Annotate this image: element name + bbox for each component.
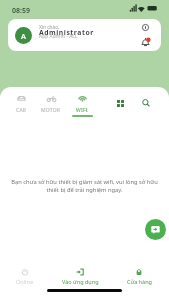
- button[interactable]: CAR: [5, 88, 37, 119]
- staticText: Xin chào,: [39, 24, 60, 31]
- button[interactable]: MOTOR: [35, 88, 67, 119]
- button[interactable]: Add new device: [145, 219, 166, 240]
- button[interactable]: Search: [134, 91, 158, 115]
- button[interactable]: Information: [138, 20, 152, 34]
- staticText: CAR: [16, 107, 27, 114]
- staticText: MOTOR: [41, 107, 61, 114]
- button[interactable]: Vào ứng dụng: [56, 258, 104, 300]
- staticText: Cửa hàng: [127, 278, 152, 285]
- button[interactable]: Online: [1, 258, 49, 300]
- button[interactable]: A: [8, 19, 161, 51]
- button[interactable]: WIFI: [66, 88, 98, 119]
- button[interactable]: Grid view: [108, 91, 132, 115]
- staticText: Bạn chưa sở hữu thiết bị giám sát wifi, …: [7, 178, 162, 194]
- staticText: Vào ứng dụng: [62, 278, 99, 285]
- staticText: Online: [16, 278, 34, 285]
- staticText: Administrator: [39, 28, 94, 37]
- staticText: App Admin - ALL: [39, 33, 78, 40]
- button[interactable]: Notifications: [137, 34, 153, 50]
- staticText: A: [21, 31, 26, 41]
- staticText: WIFI: [76, 107, 88, 114]
- button[interactable]: Cửa hàng: [115, 258, 163, 300]
- staticText: 08:59: [12, 6, 30, 16]
